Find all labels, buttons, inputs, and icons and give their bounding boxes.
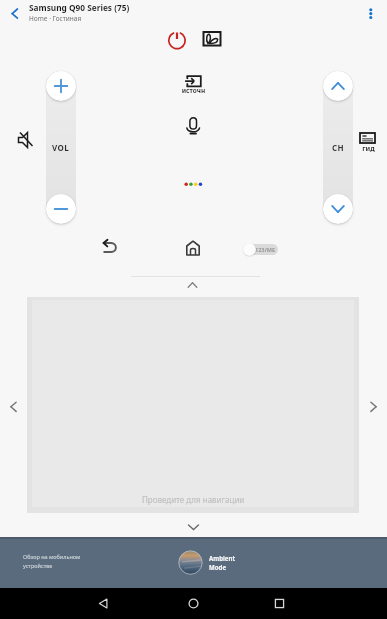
staticText: Samsung Q90 Series (75) (29, 2, 130, 13)
button[interactable]: Home (182, 239, 204, 261)
staticText: Проведите для навигации (142, 494, 245, 505)
button[interactable]: Volume down (46, 194, 76, 224)
staticText: 123/МЕ (255, 246, 275, 253)
button[interactable]: Numeric keypad (244, 244, 278, 255)
button[interactable]: System home (185, 595, 202, 612)
button[interactable]: гид (355, 130, 380, 154)
button[interactable]: Show more controls (181, 273, 205, 297)
button[interactable]: Channel up (323, 71, 353, 101)
staticText: Mode (209, 563, 227, 571)
button[interactable]: Ambient picture (201, 28, 223, 50)
button[interactable]: Voice search (181, 111, 205, 135)
button[interactable]: Back (3, 1, 27, 25)
staticText: Обзор на мобильном (23, 553, 81, 560)
button[interactable]: Ambient (178, 550, 236, 575)
staticText: устройстве (23, 562, 53, 569)
button[interactable]: источн (178, 73, 209, 97)
button[interactable]: Recent apps (271, 595, 288, 612)
staticText: Home · Гостиная (29, 14, 82, 23)
button[interactable]: Power (165, 28, 189, 52)
staticText: гид (356, 144, 381, 154)
button[interactable]: Volume up (46, 71, 76, 101)
staticText: источн (178, 86, 209, 95)
button[interactable]: More options (361, 3, 381, 23)
button[interactable]: Left (2, 394, 26, 418)
button[interactable]: Right (361, 394, 385, 418)
button[interactable]: Channel down (323, 194, 353, 224)
button[interactable]: System back (95, 595, 112, 612)
button[interactable]: Colour buttons (182, 178, 205, 190)
staticText: VOL (52, 142, 70, 153)
button[interactable]: Back (100, 238, 124, 262)
button[interactable]: Hide controls (181, 515, 205, 539)
staticText: CH (332, 142, 345, 153)
staticText: Ambient (209, 554, 236, 562)
button[interactable]: Обзор на мобильном (23, 553, 81, 569)
button[interactable]: Mute (12, 127, 38, 153)
